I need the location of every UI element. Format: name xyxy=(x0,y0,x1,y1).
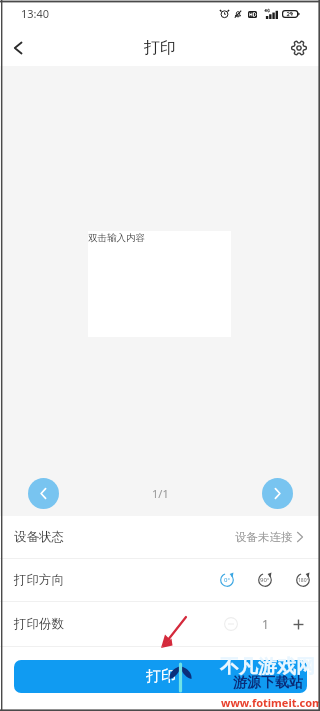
button[interactable]: Rotate 90 degrees xyxy=(258,573,272,587)
staticText: 1/1 xyxy=(152,486,169,501)
staticText: 1 xyxy=(262,616,269,632)
button[interactable]: Settings xyxy=(283,32,315,64)
staticText: 双击输入内容 xyxy=(88,232,145,244)
staticText: 设备状态 xyxy=(14,529,64,545)
button[interactable]: Next page xyxy=(262,478,293,509)
staticText: 0° xyxy=(224,576,231,584)
button[interactable]: Decrease copies xyxy=(220,613,242,635)
button[interactable]: Back xyxy=(2,32,34,64)
button[interactable]: 打印方向 xyxy=(0,559,320,601)
staticText: 不凡游戏网 xyxy=(220,655,315,679)
staticText: www.fotimeit.com xyxy=(221,695,320,710)
staticText: 打印方向 xyxy=(14,572,64,588)
button[interactable]: Rotate 0 degrees xyxy=(220,573,234,587)
staticText: 180° xyxy=(298,577,309,584)
button[interactable]: 双击输入内容 xyxy=(88,231,231,337)
staticText: 90° xyxy=(260,576,270,584)
button[interactable]: 设备状态 xyxy=(0,516,320,558)
button[interactable]: Increase copies xyxy=(287,613,309,635)
button[interactable]: Previous page xyxy=(28,478,59,509)
staticText: 打印 xyxy=(144,38,176,58)
button[interactable]: 打印 xyxy=(14,660,307,693)
staticText: 游源下载站 xyxy=(233,674,303,692)
button[interactable]: Rotate 180 degrees xyxy=(296,573,310,587)
staticText: 设备未连接 xyxy=(235,530,293,544)
staticText: 13:40 xyxy=(21,6,50,21)
staticText: 打印份数 xyxy=(14,616,64,632)
button[interactable]: 打印份数 xyxy=(0,602,320,646)
staticText: 打印 xyxy=(146,667,176,686)
